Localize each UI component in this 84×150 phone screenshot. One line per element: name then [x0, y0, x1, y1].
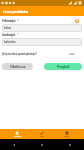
button[interactable]: Izaberi	[2, 24, 82, 32]
staticText: Izvoz	[64, 135, 69, 138]
button[interactable]: Obriši sve	[2, 63, 33, 70]
staticText: Unos podataka	[3, 9, 28, 14]
button[interactable]: Pregled	[44, 63, 82, 70]
staticText: Izaberi dan	[4, 40, 16, 44]
staticText: Izaberi	[4, 26, 11, 30]
staticText: *	[17, 19, 19, 23]
button[interactable]: Početna	[5, 129, 29, 139]
button[interactable]: Izaberi dan	[2, 38, 82, 46]
staticText: Završna tjed.	[2, 33, 16, 37]
button[interactable]: Izvoz	[54, 129, 79, 139]
staticText: Obriši sve	[10, 64, 26, 69]
staticText: 0	[76, 19, 78, 23]
staticText: Početna tjed.	[2, 19, 16, 23]
staticText: Je li potrebno upisati plaćanje?	[2, 52, 37, 56]
staticText: Unos	[39, 135, 44, 138]
staticText: *	[17, 33, 19, 37]
button[interactable]: Toggle payment entry	[66, 52, 75, 56]
staticText: Početna	[14, 135, 21, 138]
button[interactable]: Notifications	[75, 19, 79, 23]
staticText: Pregled	[57, 64, 70, 69]
button[interactable]: Unos	[29, 129, 54, 139]
